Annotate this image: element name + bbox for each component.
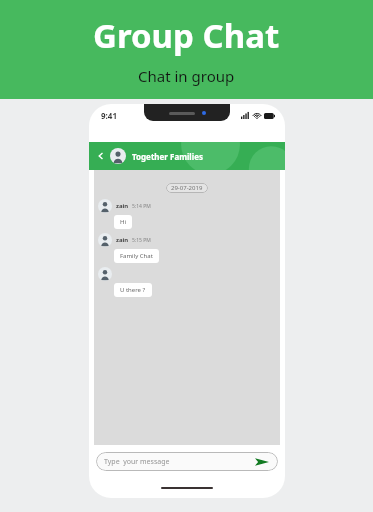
staticText: Chat in group (138, 66, 235, 86)
staticText: Family Chat (120, 252, 153, 260)
button[interactable]: Send (254, 455, 270, 469)
staticText: zain (116, 236, 129, 244)
staticText: Together Families (132, 151, 203, 162)
staticText: 5:15 PM (132, 237, 151, 244)
button[interactable]: U there ? (114, 283, 152, 297)
staticText: 5:14 PM (132, 203, 151, 210)
staticText: U there ? (120, 286, 146, 294)
staticText: 9:41 (101, 110, 117, 121)
button[interactable]: Back (95, 150, 107, 162)
staticText: Group Chat (93, 13, 280, 58)
button[interactable]: Family Chat (114, 249, 159, 263)
staticText: 29-07-2019 (171, 184, 203, 192)
staticText: Type your message (104, 457, 254, 467)
staticText: Hi (120, 218, 126, 226)
staticText: zain (116, 202, 129, 210)
button[interactable]: Type your message (96, 452, 278, 471)
button[interactable]: Hi (114, 215, 132, 229)
